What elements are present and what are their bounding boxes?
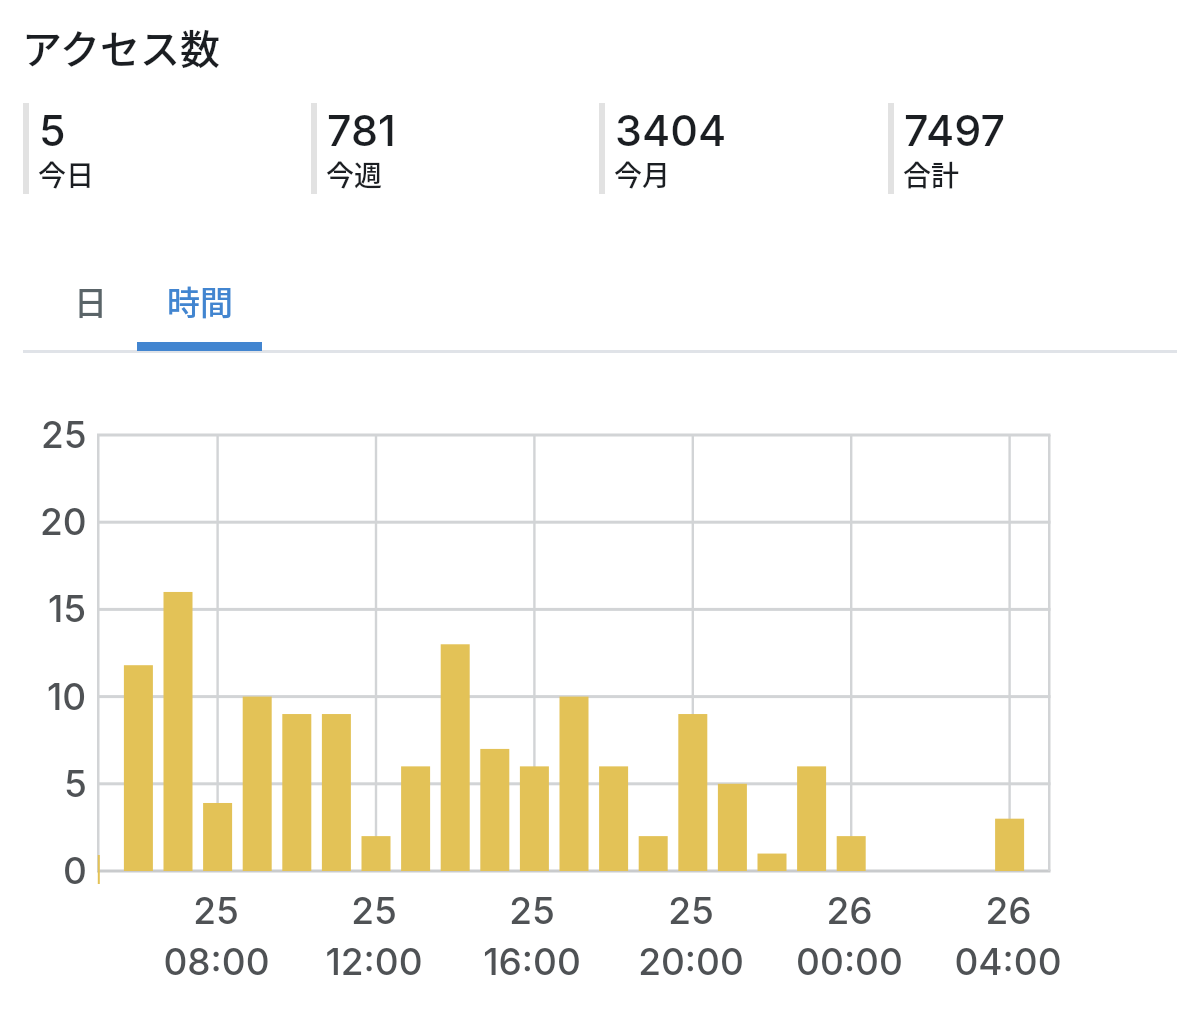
staticText: 26 [985,888,1032,933]
staticText: 08:00 [163,939,270,984]
staticText: アクセス数 [22,18,220,76]
staticText: 25 [41,412,87,457]
button[interactable]: 時間 [137,271,262,351]
staticText: 25 [193,888,239,933]
button[interactable]: 今月 3404 [599,97,888,190]
staticText: 日 [74,277,107,325]
staticText: 04:00 [954,939,1062,984]
staticText: 25 [668,888,714,933]
staticText: 26 [826,888,873,933]
staticText: 12:00 [325,939,423,984]
button[interactable]: 日 [43,271,137,351]
staticText: 時間 [167,277,233,325]
staticText: 781 [327,104,396,156]
staticText: 20:00 [638,939,744,984]
staticText: 5 [64,761,87,806]
staticText: 3404 [615,104,727,156]
staticText: 25 [351,888,397,933]
staticText: 今月 [614,154,671,195]
staticText: 00:00 [796,939,903,984]
staticText: 10 [47,674,87,719]
staticText: 20 [40,499,87,544]
staticText: 16:00 [483,939,581,984]
staticText: 7497 [904,104,1006,156]
staticText: 5 [39,104,66,156]
staticText: 0 [63,848,87,893]
staticText: 合計 [903,154,960,195]
staticText: 25 [509,888,555,933]
button[interactable]: 今日 5 [23,97,311,190]
button[interactable]: 合計 7497 [888,97,1177,190]
staticText: 15 [48,586,87,631]
button[interactable]: 今週 781 [311,97,599,190]
staticText: 今日 [38,154,95,195]
staticText: 今週 [326,154,383,195]
